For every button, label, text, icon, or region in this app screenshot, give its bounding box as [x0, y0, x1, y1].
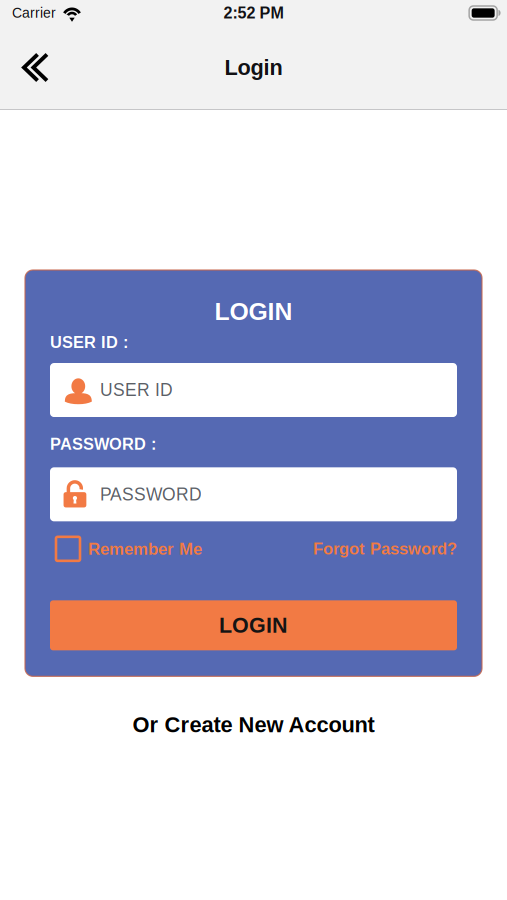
staticText: 2:52 PM	[223, 4, 283, 22]
button[interactable]: Remember Me	[50, 535, 202, 563]
staticText: USER ID :	[50, 333, 128, 351]
staticText: PASSWORD	[100, 485, 202, 504]
staticText: LOGIN	[214, 297, 292, 325]
staticText: USER ID	[100, 380, 173, 400]
staticText: Or Create New Account	[132, 712, 374, 737]
staticText: Login	[224, 55, 282, 80]
staticText: Carrier	[12, 5, 56, 21]
button[interactable]: Back	[0, 26, 70, 109]
button[interactable]: LOGIN	[50, 600, 457, 650]
staticText: LOGIN	[219, 613, 288, 637]
staticText: Forgot Password?	[313, 540, 457, 558]
button[interactable]: Forgot Password?	[313, 535, 457, 563]
staticText: PASSWORD :	[50, 435, 156, 453]
staticText: Remember Me	[88, 539, 202, 558]
